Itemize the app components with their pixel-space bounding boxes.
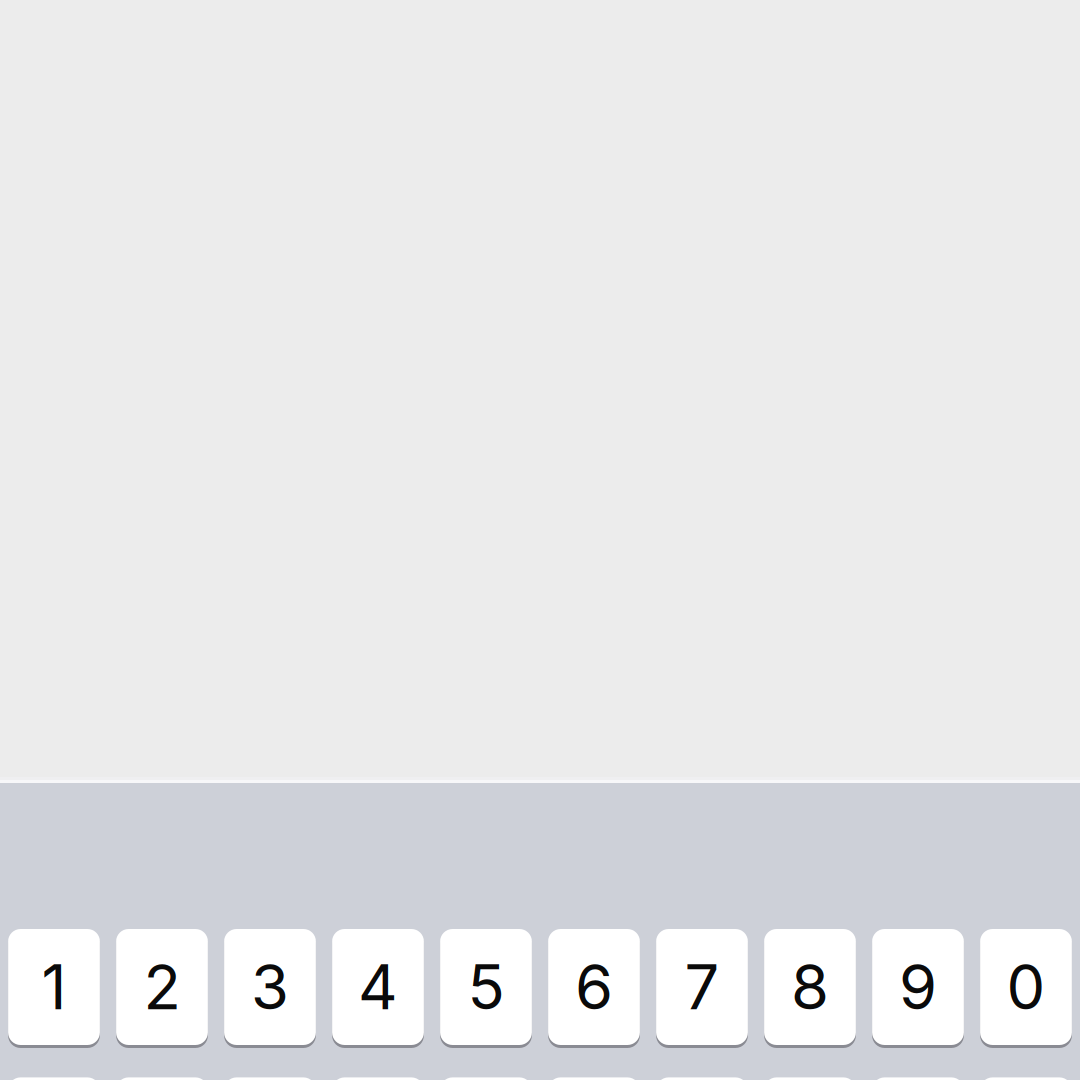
- button[interactable]: 8: [764, 929, 856, 1048]
- staticText: 0: [1006, 950, 1045, 1024]
- button[interactable]: 3: [224, 929, 316, 1048]
- button[interactable]: :: [224, 1077, 316, 1080]
- staticText: 4: [358, 950, 398, 1024]
- staticText: 5: [467, 950, 504, 1024]
- button[interactable]: $: [656, 1077, 748, 1080]
- button[interactable]: 0: [980, 929, 1072, 1048]
- staticText: 8: [791, 950, 829, 1024]
- button[interactable]: ): [548, 1077, 640, 1080]
- staticText: 6: [575, 950, 613, 1024]
- staticText: 2: [143, 950, 180, 1024]
- staticText: 9: [899, 950, 937, 1024]
- button[interactable]: @: [872, 1077, 964, 1080]
- button[interactable]: ": [980, 1077, 1072, 1080]
- button[interactable]: -: [8, 1077, 100, 1080]
- staticText: 3: [251, 950, 289, 1024]
- button[interactable]: 5: [440, 929, 532, 1048]
- button[interactable]: 7: [656, 929, 748, 1048]
- button[interactable]: 2: [116, 929, 208, 1048]
- button[interactable]: 1: [8, 929, 100, 1048]
- button[interactable]: &: [764, 1077, 856, 1080]
- button[interactable]: 6: [548, 929, 640, 1048]
- button[interactable]: /: [116, 1077, 208, 1080]
- staticText: 1: [41, 950, 66, 1024]
- button[interactable]: 9: [872, 929, 964, 1048]
- staticText: 7: [684, 950, 719, 1024]
- button[interactable]: ;: [332, 1077, 424, 1080]
- button[interactable]: (: [440, 1077, 532, 1080]
- button[interactable]: 4: [332, 929, 424, 1048]
